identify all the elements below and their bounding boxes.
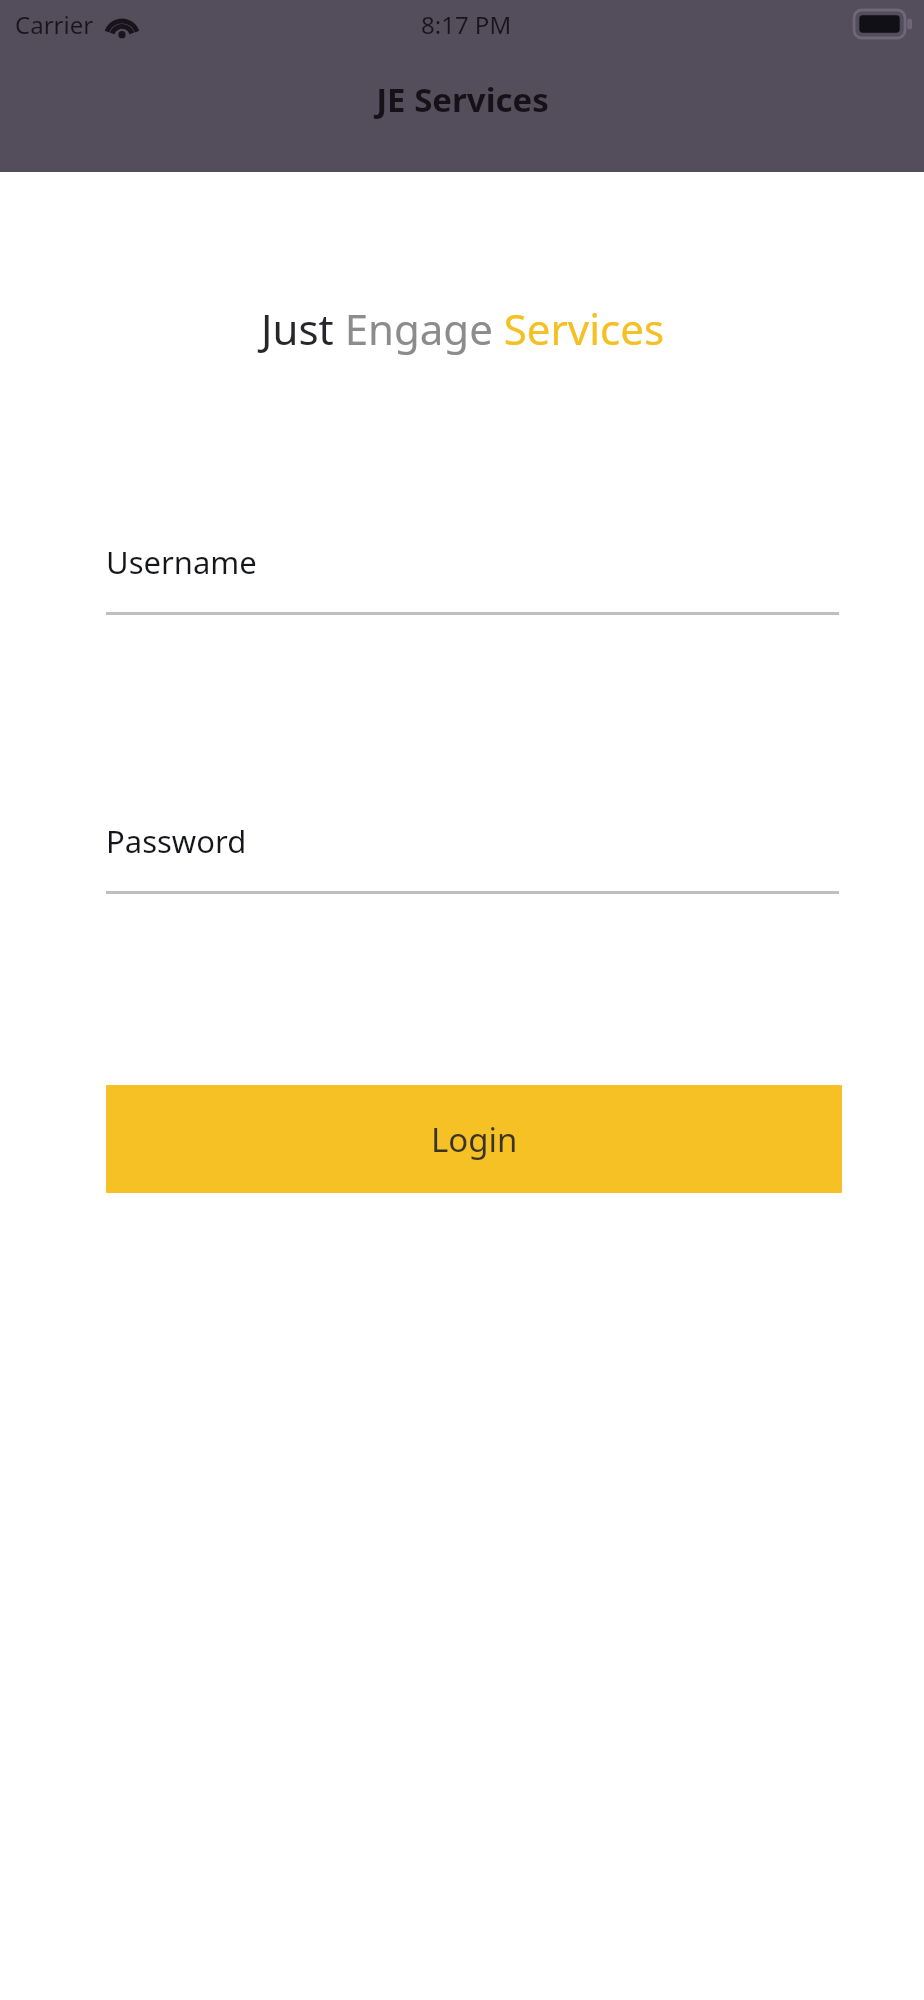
button[interactable]: Username — [106, 541, 839, 615]
staticText: Just Engage Services — [261, 300, 664, 357]
staticText: 8:17 PM — [421, 8, 512, 41]
button[interactable]: Login — [106, 1085, 842, 1193]
other: Battery full — [854, 10, 912, 38]
staticText: Username — [106, 541, 257, 583]
staticText: Carrier — [15, 8, 94, 41]
staticText: JE Services — [376, 77, 549, 122]
button[interactable]: Password — [106, 820, 839, 894]
staticText: Password — [106, 820, 247, 862]
staticText: Login — [431, 1117, 518, 1162]
